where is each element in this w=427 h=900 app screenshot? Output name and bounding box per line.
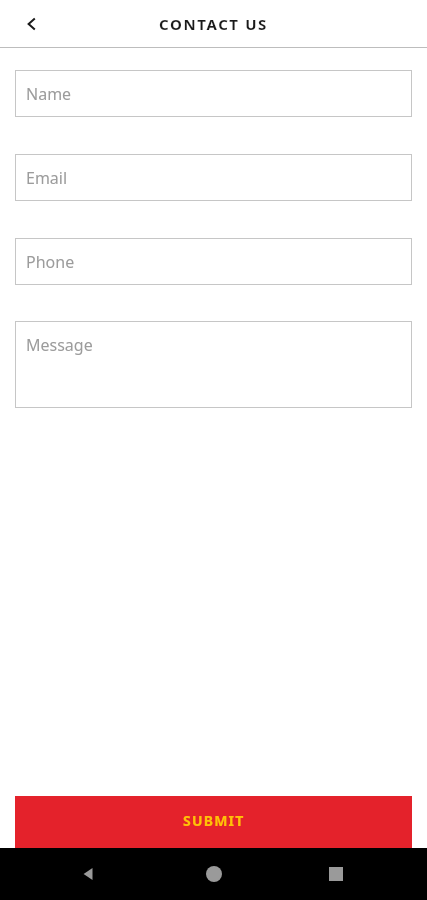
button[interactable]: Phone [15,238,412,285]
button[interactable]: Back [67,852,111,896]
staticText: Email [26,167,68,189]
staticText: SUBMIT [183,811,245,830]
staticText: CONTACT US [159,14,268,34]
button[interactable]: Name [15,70,412,117]
button[interactable]: Message [15,321,412,408]
button[interactable]: Home [192,852,236,896]
button[interactable]: Email [15,154,412,201]
button[interactable]: SUBMIT [15,796,412,848]
staticText: Name [26,83,72,105]
staticText: Message [26,334,93,356]
staticText: Phone [26,251,75,273]
button[interactable]: Recent apps [314,852,358,896]
button[interactable]: Back [12,4,52,44]
